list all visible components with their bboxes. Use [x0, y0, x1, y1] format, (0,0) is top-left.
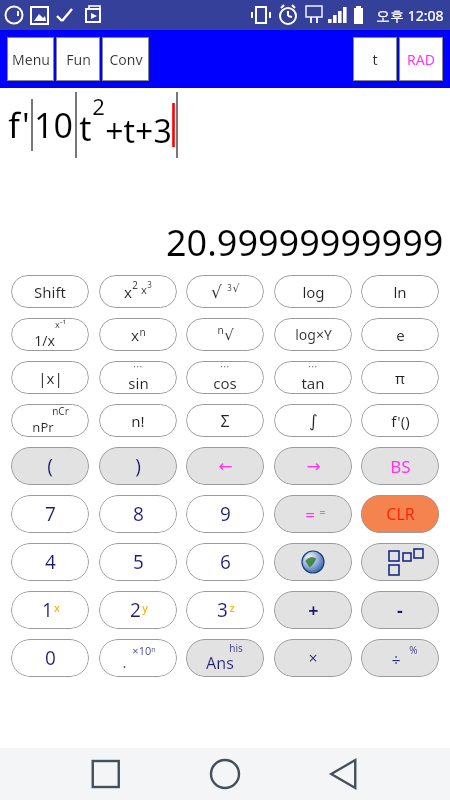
staticText: cos: [213, 373, 237, 393]
button[interactable]: Clear: [361, 495, 439, 533]
button[interactable]: pi: [361, 361, 439, 394]
button[interactable]: t: [353, 37, 397, 81]
staticText: Σ: [220, 410, 230, 432]
staticText: z: [229, 600, 235, 615]
button[interactable]: Menu: [7, 37, 54, 81]
button[interactable]: ln: [361, 275, 439, 308]
button[interactable]: log x Y: [274, 318, 352, 351]
staticText: =: [305, 503, 315, 526]
button[interactable]: 1x: [11, 591, 89, 629]
staticText: 8: [133, 501, 144, 527]
button[interactable]: Fun: [56, 37, 100, 81]
staticText: 20.99999999999: [166, 218, 444, 267]
staticText: →: [306, 456, 321, 476]
button[interactable]: 3z: [186, 591, 264, 629]
button[interactable]: Answer history: [186, 639, 264, 677]
staticText: √: [224, 326, 234, 343]
button[interactable]: xn: [99, 318, 177, 351]
staticText: 2: [132, 278, 138, 292]
button[interactable]: absolute value: [11, 361, 89, 394]
staticText: t: [79, 105, 92, 151]
button[interactable]: divide percent: [361, 639, 439, 677]
button[interactable]: Backspace: [361, 447, 439, 485]
staticText: 7: [45, 501, 56, 527]
button[interactable]: open paren: [11, 447, 89, 485]
staticText: f': [8, 102, 30, 148]
button[interactable]: plus: [274, 591, 352, 629]
button[interactable]: minus: [361, 591, 439, 629]
button[interactable]: multiply: [274, 639, 352, 677]
staticText: 1/x: [34, 331, 55, 350]
staticText: √: [232, 282, 240, 295]
button[interactable]: cos: [186, 361, 264, 394]
staticText: tan: [301, 373, 325, 393]
staticText: =: [319, 504, 326, 519]
button[interactable]: decimal point times ten to n: [99, 639, 177, 677]
staticText: his: [229, 641, 243, 655]
button[interactable]: 9: [186, 495, 264, 533]
staticText: log: [302, 282, 325, 302]
staticText: ÷: [391, 649, 401, 671]
button[interactable]: Conv: [102, 37, 149, 81]
button[interactable]: square root: [186, 275, 264, 308]
staticText: ⋯: [133, 361, 143, 373]
button[interactable]: x squared: [99, 275, 177, 308]
staticText: n!: [131, 411, 145, 431]
staticText: ): [135, 453, 141, 479]
staticText: Ans: [206, 652, 234, 674]
staticText: ←: [218, 456, 233, 476]
staticText: x: [124, 282, 132, 302]
button[interactable]: Unit converter globe: [274, 543, 352, 581]
staticText: e: [396, 325, 405, 345]
staticText: π: [395, 368, 405, 388]
button[interactable]: one over x: [11, 318, 89, 351]
staticText: +t+3: [105, 109, 172, 153]
button[interactable]: cursor right: [274, 447, 352, 485]
button[interactable]: 2y: [99, 591, 177, 629]
staticText: 1: [42, 597, 53, 623]
button[interactable]: 0: [11, 639, 89, 677]
staticText: RAD: [407, 50, 435, 69]
button[interactable]: equals: [274, 495, 352, 533]
staticText: 0: [45, 645, 56, 671]
staticText: nCr: [52, 404, 69, 418]
staticText: 2: [92, 91, 105, 121]
staticText: ln: [393, 282, 407, 302]
staticText: x⁻¹: [55, 318, 66, 330]
button[interactable]: 7: [11, 495, 89, 533]
button[interactable]: nPr nCr: [11, 404, 89, 437]
staticText: Conv: [109, 50, 143, 69]
staticText: 10: [34, 102, 73, 148]
button[interactable]: 8: [99, 495, 177, 533]
button[interactable]: integral: [274, 404, 352, 437]
staticText: +: [308, 598, 319, 623]
button[interactable]: nth root: [186, 318, 264, 351]
staticText: Menu: [12, 50, 50, 69]
button[interactable]: Home: [175, 748, 275, 800]
button[interactable]: 4: [11, 543, 89, 581]
button[interactable]: log: [274, 275, 352, 308]
button[interactable]: 6: [186, 543, 264, 581]
staticText: y: [142, 600, 148, 615]
button[interactable]: e: [361, 318, 439, 351]
staticText: n: [139, 325, 146, 339]
button[interactable]: Shift: [11, 275, 89, 308]
button[interactable]: Back: [294, 748, 394, 800]
button[interactable]: close paren: [99, 447, 177, 485]
staticText: 오후 12:08: [376, 6, 444, 25]
button[interactable]: cursor left: [186, 447, 264, 485]
staticText: log×Y: [295, 325, 332, 344]
button[interactable]: RAD: [399, 37, 443, 81]
staticText: ⋯: [308, 361, 318, 373]
button[interactable]: 5: [99, 543, 177, 581]
button[interactable]: tan: [274, 361, 352, 394]
staticText: t: [372, 50, 378, 69]
button[interactable]: derivative: [361, 404, 439, 437]
button[interactable]: sin: [99, 361, 177, 394]
button[interactable]: Recent apps: [56, 748, 156, 800]
staticText: 4: [45, 549, 56, 575]
button[interactable]: factorial: [99, 404, 177, 437]
staticText: 9: [220, 501, 231, 527]
button[interactable]: Matrix: [361, 543, 439, 581]
button[interactable]: sigma sum: [186, 404, 264, 437]
